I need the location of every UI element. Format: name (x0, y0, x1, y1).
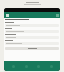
button[interactable]: Tab (35, 63, 41, 69)
button[interactable] (5, 28, 59, 34)
button[interactable]: Tab (48, 63, 54, 69)
button[interactable]: More options (55, 13, 59, 17)
button[interactable]: Tab (10, 63, 16, 69)
button[interactable] (5, 47, 59, 50)
button[interactable]: Back (5, 13, 9, 17)
button[interactable] (5, 22, 59, 28)
button[interactable] (5, 40, 59, 46)
button[interactable]: Tab (23, 63, 29, 69)
button[interactable] (5, 34, 59, 40)
